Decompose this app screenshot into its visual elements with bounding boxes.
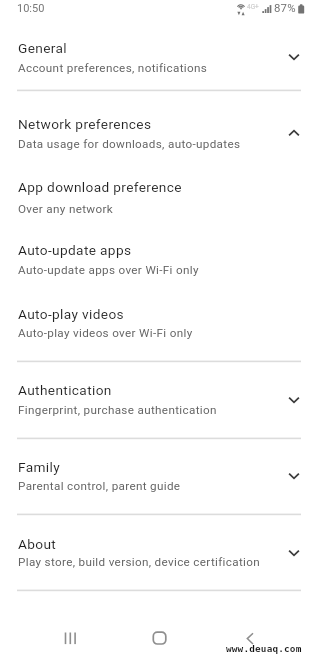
- staticText: Family: [18, 459, 61, 475]
- button[interactable]: Family: [0, 439, 320, 514]
- button[interactable]: Home: [144, 622, 176, 654]
- staticText: Parental control, parent guide: [18, 479, 181, 493]
- staticText: General: [18, 40, 67, 56]
- button[interactable]: Expand: [280, 43, 308, 71]
- button[interactable]: Expand: [280, 539, 308, 567]
- button[interactable]: Expand: [280, 386, 308, 414]
- button[interactable]: About: [0, 515, 320, 590]
- staticText: Network preferences: [18, 116, 152, 132]
- staticText: 10:50: [17, 2, 45, 15]
- staticText: 87%: [274, 1, 296, 14]
- button[interactable]: Auto-play videos: [0, 281, 320, 361]
- button[interactable]: Recent apps: [54, 622, 86, 654]
- button[interactable]: Auto-update apps: [0, 217, 320, 281]
- staticText: About: [18, 536, 57, 552]
- button[interactable]: Back: [234, 622, 266, 654]
- button[interactable]: Authentication: [0, 362, 320, 438]
- staticText: Account preferences, notifications: [18, 61, 208, 75]
- staticText: Auto-update apps over Wi-Fi only: [18, 263, 199, 277]
- staticText: Auto-update apps: [18, 242, 132, 258]
- button[interactable]: App download preference: [0, 154, 320, 217]
- staticText: 4G+: [247, 3, 259, 11]
- button[interactable]: General: [0, 19, 320, 90]
- button[interactable]: Expand: [280, 462, 308, 490]
- staticText: Authentication: [18, 382, 112, 398]
- staticText: Auto-play videos over Wi-Fi only: [18, 326, 193, 340]
- staticText: Play store, build version, device certif…: [18, 555, 261, 569]
- staticText: www.deuaq.com: [226, 643, 302, 654]
- staticText: Over any network: [18, 202, 114, 216]
- button[interactable]: Collapse: [280, 119, 308, 147]
- staticText: Auto-play videos: [18, 306, 124, 322]
- button[interactable]: Network preferences: [0, 91, 320, 154]
- staticText: App download preference: [18, 179, 182, 195]
- staticText: Data usage for downloads, auto-updates: [18, 137, 241, 151]
- staticText: Fingerprint, purchase authentication: [18, 403, 217, 417]
